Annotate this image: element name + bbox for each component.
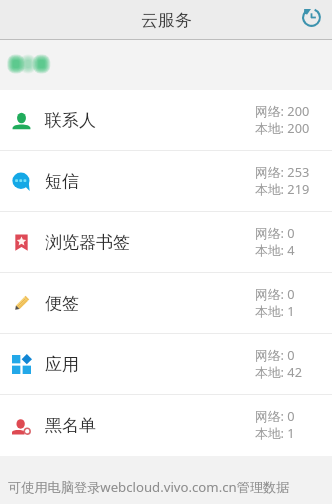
staticText: 本地: 42 [255, 363, 302, 380]
button[interactable]: 浏览器书签 [0, 212, 332, 273]
button[interactable]: History [294, 0, 328, 34]
staticText: 本地: 1 [255, 302, 295, 319]
staticText: 可使用电脑登录webcloud.vivo.com.cn管理数据 [8, 478, 290, 496]
staticText: 网络: 0 [255, 285, 295, 302]
staticText: 短信 [45, 171, 79, 192]
staticText: 本地: 219 [255, 180, 310, 197]
button[interactable]: 黑名单 [0, 395, 332, 456]
button[interactable]: 便签 [0, 273, 332, 334]
staticText: 应用 [45, 354, 79, 375]
staticText: 黑名单 [45, 415, 96, 436]
staticText: 便签 [45, 293, 79, 314]
staticText: 云服务 [141, 10, 192, 31]
button[interactable] [0, 40, 332, 90]
staticText: 网络: 200 [255, 102, 310, 119]
staticText: 本地: 4 [255, 241, 295, 258]
staticText: 本地: 200 [255, 119, 310, 136]
staticText: 网络: 253 [255, 163, 310, 180]
staticText: 联系人 [45, 110, 96, 131]
button[interactable]: 联系人 [0, 90, 332, 151]
staticText: 浏览器书签 [45, 232, 130, 253]
staticText: 网络: 0 [255, 346, 295, 363]
staticText: 网络: 0 [255, 224, 295, 241]
button[interactable]: 短信 [0, 151, 332, 212]
staticText: 本地: 1 [255, 424, 295, 441]
staticText: 网络: 0 [255, 407, 295, 424]
button[interactable]: 应用 [0, 334, 332, 395]
